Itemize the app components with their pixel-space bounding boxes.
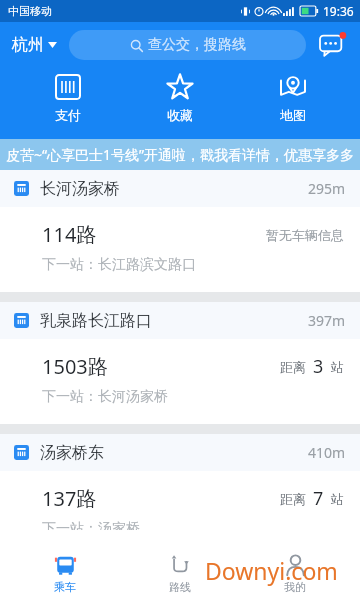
staticText: 我的 (284, 580, 306, 594)
staticText: 距离 (280, 491, 306, 507)
staticText: 295m (308, 179, 346, 198)
staticText: 397m (308, 311, 346, 330)
staticText: 乘车 (54, 580, 76, 594)
button[interactable]: 长河汤家桥 (0, 170, 360, 292)
staticText: 支付 (55, 107, 81, 123)
staticText: 皮苦~“心享巴士1号线”开通啦，戳我看详情，优惠享多多 (6, 145, 355, 164)
button[interactable]: 皮苦~“心享巴士1号线”开通啦，戳我看详情，优惠享多多 (0, 139, 360, 170)
staticText: 下一站：长河汤家桥 (42, 388, 168, 406)
button[interactable]: 汤家桥东 (0, 434, 360, 548)
button[interactable]: 查公交，搜路线 (69, 30, 306, 60)
button[interactable]: 杭州 (10, 31, 59, 59)
staticText: 3 (313, 354, 324, 379)
staticText: 下一站：长江路滨文路口 (42, 256, 196, 274)
staticText: 下一站：汤家桥 (42, 520, 140, 530)
button[interactable]: Messages (316, 28, 350, 62)
button[interactable]: 乳泉路长江路口 (0, 302, 360, 424)
staticText: 410m (308, 443, 346, 462)
staticText: 收藏 (167, 107, 193, 123)
staticText: 汤家桥东 (40, 443, 104, 463)
staticText: 长河汤家桥 (40, 179, 120, 199)
staticText: 查公交，搜路线 (148, 36, 246, 54)
staticText: 距离 (280, 359, 306, 375)
staticText: 7 (313, 486, 324, 511)
staticText: 站 (331, 359, 344, 375)
button[interactable]: 收藏 (135, 70, 225, 125)
staticText: 114路 (42, 221, 97, 248)
staticText: 中国移动 (8, 4, 52, 18)
button[interactable]: 我的 (245, 548, 345, 600)
staticText: 乳泉路长江路口 (40, 311, 152, 331)
staticText: 地图 (280, 107, 306, 123)
button[interactable]: 乘车 (15, 548, 115, 600)
staticText: 137路 (42, 485, 97, 512)
button[interactable]: 支付 (23, 70, 113, 125)
staticText: 路线 (169, 580, 191, 594)
staticText: 杭州 (12, 35, 44, 55)
staticText: 暂无车辆信息 (266, 227, 344, 243)
staticText: 19:36 (323, 3, 354, 19)
staticText: Downyi.com (205, 555, 338, 586)
button[interactable]: 路线 (130, 548, 230, 600)
staticText: 1503路 (42, 353, 108, 380)
button[interactable]: 地图 (248, 70, 338, 125)
staticText: 站 (331, 491, 344, 507)
